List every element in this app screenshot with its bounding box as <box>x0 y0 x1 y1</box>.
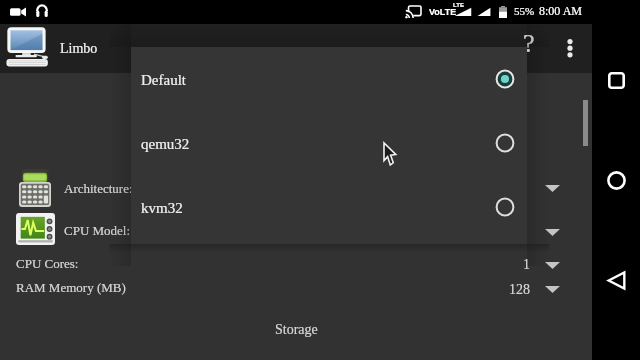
button[interactable]: Expand <box>540 177 564 199</box>
button[interactable]: Expand <box>540 221 564 243</box>
button[interactable]: Storage <box>248 316 344 344</box>
staticText: kvm32 <box>141 200 183 217</box>
button[interactable]: Recents <box>596 60 636 100</box>
staticText: 55% <box>514 5 535 17</box>
staticText: CPU Cores: <box>16 256 79 270</box>
staticText: CPU Model: <box>64 223 131 237</box>
staticText: 1 <box>523 257 530 273</box>
button[interactable]: Default <box>131 47 527 111</box>
button[interactable]: Default <box>131 47 527 244</box>
staticText: qemu32 <box>141 136 190 153</box>
staticText: VoLTE <box>429 7 457 17</box>
staticText: Storage <box>275 322 318 338</box>
staticText: ? <box>523 29 535 58</box>
button[interactable]: Help <box>506 26 550 70</box>
staticText: 8:00 AM <box>539 4 583 17</box>
staticText: Limbo <box>60 41 98 57</box>
staticText: Default <box>141 72 186 89</box>
button[interactable]: More options <box>548 26 592 70</box>
staticText: Architecture: <box>64 181 133 195</box>
staticText: RAM Memory (MB) <box>16 280 126 294</box>
staticText: LTE <box>453 2 464 9</box>
button[interactable]: kvm32 <box>131 175 527 239</box>
button[interactable]: Expand <box>540 254 564 276</box>
staticText: 128 <box>509 282 530 298</box>
button[interactable]: Expand <box>540 278 564 300</box>
button[interactable]: qemu32 <box>131 111 527 175</box>
button[interactable]: Back <box>596 260 636 300</box>
button[interactable]: Home <box>596 160 636 200</box>
